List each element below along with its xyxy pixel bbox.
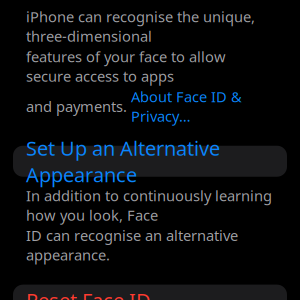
staticText: In addition to continuously learning how… [26, 186, 272, 225]
staticText: iPhone can recognise the unique, three-d… [26, 7, 255, 46]
staticText: features of your face to allow secure ac… [26, 47, 226, 86]
staticText: and payments. [26, 96, 131, 116]
staticText: Reset Face ID [26, 287, 151, 300]
button[interactable]: About Face ID & Privacy… [131, 87, 242, 126]
button[interactable]: Set Up an Alternative Appearance [13, 146, 287, 177]
staticText: ID can recognise an alternative appearan… [26, 226, 238, 265]
staticText: Set Up an Alternative Appearance [26, 135, 220, 188]
staticText: About Face ID & Privacy… [131, 87, 242, 126]
button[interactable]: Reset Face ID [13, 285, 287, 300]
